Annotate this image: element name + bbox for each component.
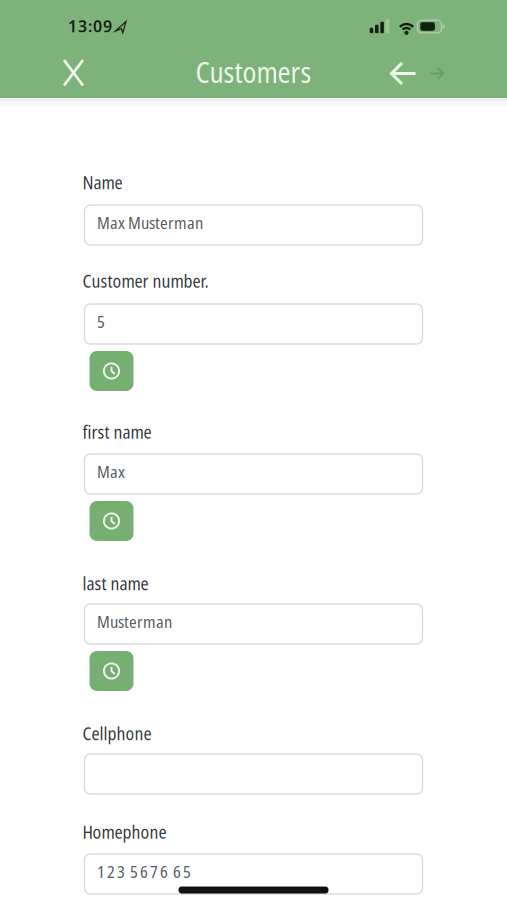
button[interactable]: Previous bbox=[389, 60, 417, 86]
button[interactable]: Next bbox=[429, 66, 444, 80]
staticText: 1 2 3 5 6 7 6 6 5 bbox=[97, 860, 191, 883]
button[interactable]: Pick time bbox=[89, 501, 133, 541]
button[interactable]: Pick time bbox=[89, 651, 133, 691]
staticText: last name bbox=[82, 571, 148, 595]
staticText: Name bbox=[82, 170, 122, 194]
button[interactable]: Pick time bbox=[89, 351, 133, 391]
staticText: 13:09 bbox=[68, 15, 112, 37]
staticText: Cellphone bbox=[82, 721, 151, 745]
staticText: 5 bbox=[97, 310, 105, 333]
staticText: first name bbox=[82, 420, 151, 444]
staticText: Max Musterman bbox=[97, 211, 203, 234]
button[interactable]: Close bbox=[51, 50, 95, 94]
staticText: Customers bbox=[195, 53, 311, 91]
staticText: Customer number. bbox=[82, 269, 208, 293]
staticText: Homephone bbox=[82, 820, 166, 844]
staticText: Max bbox=[97, 460, 125, 483]
staticText: Musterman bbox=[97, 610, 172, 633]
